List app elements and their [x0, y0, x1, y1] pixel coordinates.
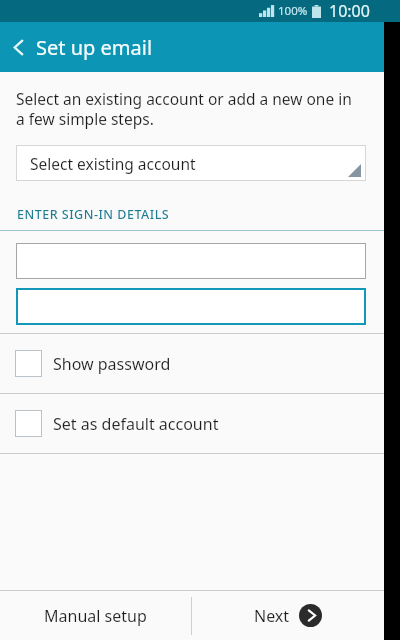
staticText: 10:00 [329, 0, 370, 22]
button[interactable] [16, 243, 366, 279]
button[interactable]: Show password [0, 334, 384, 393]
staticText: 100% [278, 3, 308, 19]
button[interactable]: Next [192, 591, 384, 640]
staticText: Set as default account [53, 413, 219, 435]
staticText: ENTER SIGN-IN DETAILS [17, 206, 170, 223]
button[interactable]: Navigate up [0, 29, 36, 65]
staticText: Select an existing account or add a new … [16, 88, 362, 130]
staticText: Select existing account [30, 153, 196, 174]
button[interactable]: Manual setup [0, 591, 191, 640]
button[interactable]: Set as default account [0, 394, 384, 453]
button[interactable] [16, 288, 366, 325]
staticText: Next [254, 605, 290, 627]
staticText: Set up email [36, 34, 153, 61]
button[interactable]: Select existing account [16, 145, 366, 181]
staticText: Show password [53, 353, 171, 375]
staticText: Manual setup [44, 605, 147, 627]
